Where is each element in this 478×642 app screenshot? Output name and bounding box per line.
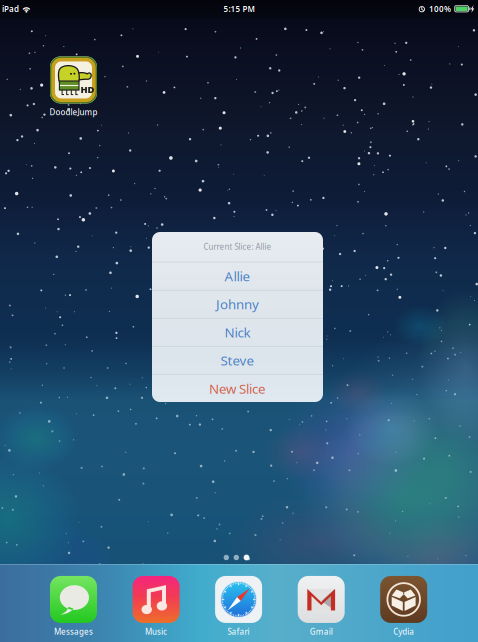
staticText: Current Slice: Allie — [203, 241, 271, 252]
button[interactable]: Nick — [152, 319, 323, 346]
button[interactable]: HD — [36, 56, 110, 117]
button[interactable]: Allie — [152, 262, 323, 290]
staticText: Gmail — [310, 626, 333, 637]
staticText: Allie — [224, 267, 250, 285]
button[interactable]: Johnny — [152, 290, 323, 318]
staticText: Steve — [220, 351, 254, 369]
button[interactable]: New Slice — [152, 375, 323, 402]
button[interactable]: Cydia — [367, 576, 441, 637]
button[interactable]: Music — [119, 576, 193, 637]
staticText: HD — [80, 83, 94, 96]
button[interactable]: Steve — [152, 347, 323, 374]
staticText: iPad — [2, 4, 19, 14]
staticText: 100% — [429, 4, 451, 14]
button[interactable]: Gmail — [284, 576, 358, 637]
staticText: Cydia — [393, 626, 414, 637]
button[interactable]: Messages — [36, 576, 110, 637]
staticText: Messages — [54, 626, 93, 637]
staticText: Safari — [228, 626, 250, 637]
staticText: Music — [145, 626, 167, 637]
staticText: 5:15 PM — [223, 4, 254, 14]
staticText: DoodleJump — [49, 107, 97, 117]
staticText: New Slice — [209, 380, 266, 397]
staticText: Nick — [224, 323, 250, 341]
staticText: Johnny — [216, 295, 259, 313]
button[interactable]: Safari — [202, 576, 276, 637]
